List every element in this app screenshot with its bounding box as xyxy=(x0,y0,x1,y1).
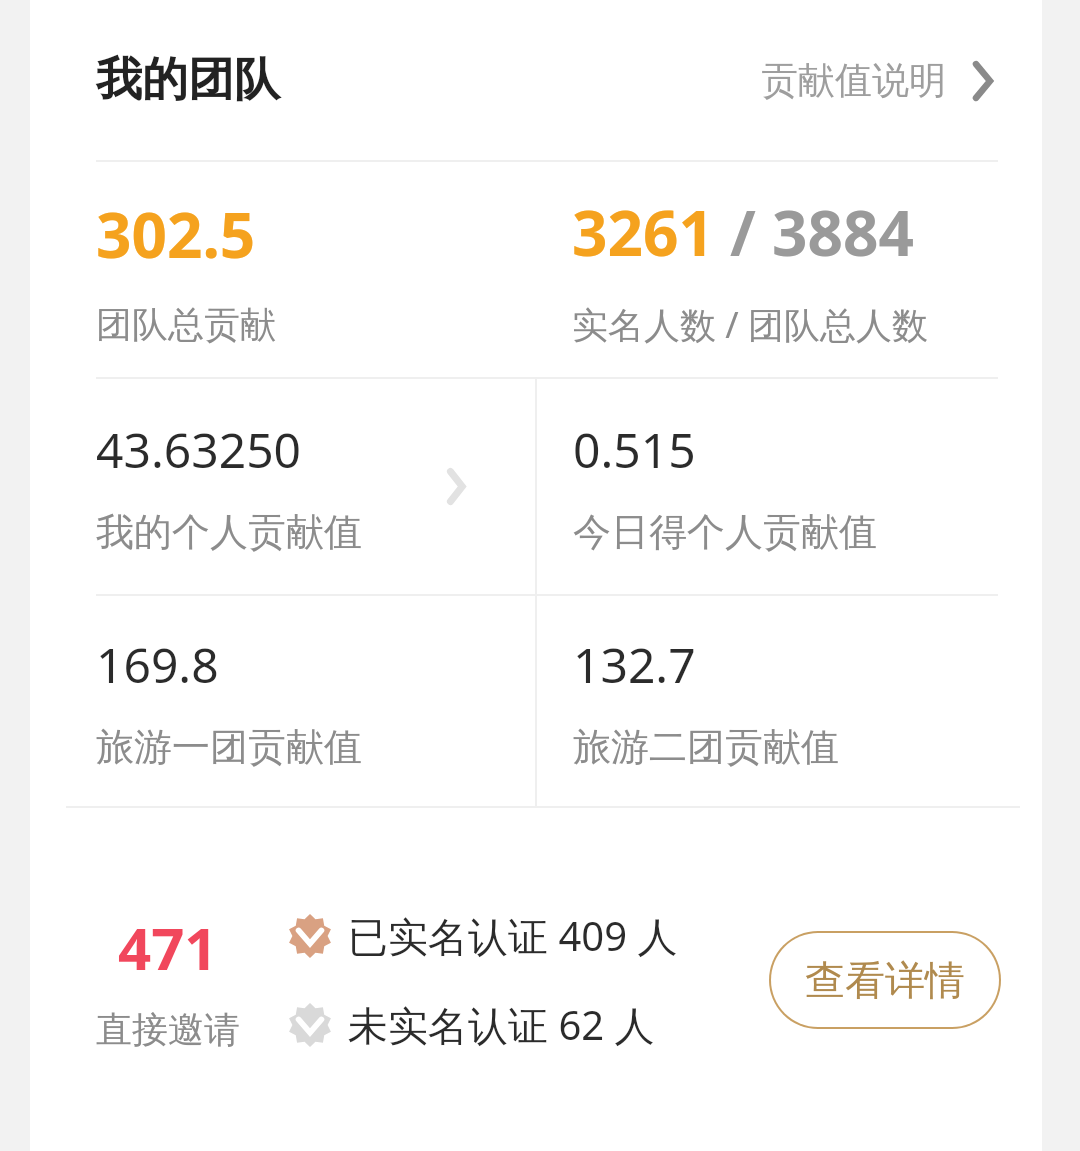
staticText: 今日得个人贡献值 xyxy=(573,508,877,556)
button[interactable]: 43.63250 xyxy=(30,379,535,594)
button[interactable]: 0.515 xyxy=(537,379,1042,594)
staticText: 查看详情 xyxy=(805,955,965,1005)
button[interactable]: 169.8 xyxy=(30,596,535,806)
staticText: 302.5 xyxy=(96,192,256,276)
staticText: 3884 xyxy=(772,190,914,274)
staticText: 直接邀请 xyxy=(96,1007,240,1052)
staticText: 未实名认证 62 人 xyxy=(348,997,655,1052)
staticText: / xyxy=(714,190,772,274)
staticText: 我的个人贡献值 xyxy=(96,508,362,556)
button[interactable]: 132.7 xyxy=(537,596,1042,806)
staticText: 团队总贡献 xyxy=(96,302,276,347)
staticText: 贡献值说明 xyxy=(761,57,946,104)
button[interactable]: 查看详情 xyxy=(768,930,1002,1030)
staticText: 132.7 xyxy=(573,632,696,697)
staticText: 471 xyxy=(118,908,218,987)
staticText: 3261 xyxy=(572,190,714,274)
staticText: 169.8 xyxy=(96,632,219,697)
staticText: 0.515 xyxy=(573,417,696,482)
staticText: 实名人数 / 团队总人数 xyxy=(572,300,929,349)
staticText: 旅游二团贡献值 xyxy=(573,723,839,771)
staticText: 我的团队 xyxy=(96,51,280,109)
staticText: 43.63250 xyxy=(96,417,302,482)
button[interactable]: 贡献值说明 xyxy=(753,47,1006,114)
staticText: 已实名认证 409 人 xyxy=(348,908,678,963)
staticText: 旅游一团贡献值 xyxy=(96,723,362,771)
